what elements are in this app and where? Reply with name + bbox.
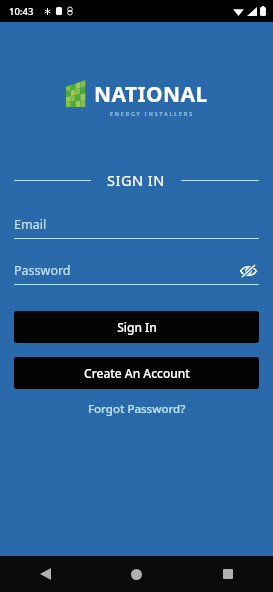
staticText: Email bbox=[14, 216, 47, 233]
button[interactable]: Sign In bbox=[14, 311, 259, 343]
button[interactable]: Recent apps bbox=[182, 556, 273, 592]
button[interactable]: Home bbox=[91, 556, 182, 592]
button[interactable]: Create An Account bbox=[14, 357, 259, 389]
button[interactable]: Show password bbox=[237, 261, 259, 280]
button[interactable]: Back bbox=[0, 556, 91, 592]
staticText: 10:43 bbox=[9, 5, 34, 18]
staticText: Create An Account bbox=[84, 365, 190, 381]
staticText: E N E R G Y I N S T A L L E R S bbox=[110, 110, 193, 117]
staticText: Password bbox=[14, 262, 71, 279]
staticText: Forgot Password? bbox=[88, 401, 186, 417]
staticText: NATIONAL bbox=[94, 80, 208, 109]
staticText: Sign In bbox=[117, 319, 157, 335]
staticText: SIGN IN bbox=[107, 170, 165, 190]
button[interactable]: Forgot Password? bbox=[80, 397, 194, 421]
